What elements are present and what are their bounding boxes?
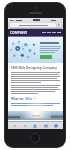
button[interactable]: Site logo: [10, 30, 28, 35]
button[interactable]: Tabs: [53, 123, 59, 129]
button[interactable]: Address bar: [10, 23, 56, 27]
staticText: SMS Web Designing Company: [11, 66, 58, 70]
staticText: ?: [34, 97, 36, 101]
other: Home: [30, 133, 40, 143]
button[interactable]: Back: [12, 123, 18, 129]
button[interactable]: Forward: [22, 123, 28, 129]
staticText: COMPANY: [10, 30, 28, 35]
staticText: What we: [11, 97, 24, 101]
button[interactable]: Bookmarks: [43, 123, 49, 129]
button[interactable]: Reload: [57, 23, 61, 27]
button[interactable]: Get started: [40, 55, 52, 59]
staticText: Offer: [25, 97, 33, 101]
button[interactable]: Gallery image: [8, 111, 63, 120]
button[interactable]: Share: [32, 123, 38, 129]
